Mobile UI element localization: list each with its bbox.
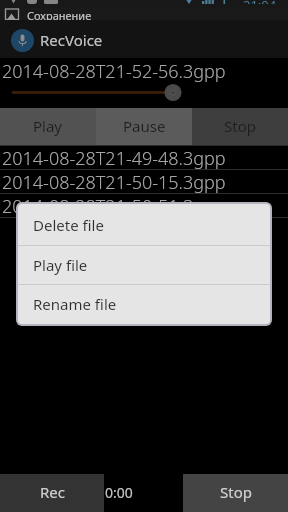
button[interactable]: Play file (18, 246, 270, 284)
button[interactable]: Rename file (18, 285, 270, 323)
staticText: 2014-08-28T21-52-56.3gpp (2, 59, 226, 84)
staticText: Stop (220, 482, 252, 502)
button[interactable]: 2014-08-28T21-50-51.3gpp (0, 194, 288, 217)
staticText: Delete file (33, 215, 104, 235)
staticText: Сохранение (27, 8, 92, 23)
staticText: Play (33, 116, 63, 136)
button[interactable]: Pause (96, 108, 192, 145)
staticText: RecVoice (40, 30, 103, 50)
staticText: 2014-08-28T21-50-15.3gpp (2, 170, 226, 193)
staticText: 2014-08-28T21-49-48.3gpp (2, 146, 226, 169)
staticText: Play file (33, 255, 88, 275)
button[interactable]: Stop (183, 474, 288, 512)
staticText: Rec (40, 482, 65, 502)
button[interactable]: Rec (0, 474, 104, 512)
button[interactable]: Delete file (18, 204, 270, 245)
staticText: Stop (224, 116, 256, 136)
button[interactable]: Play (0, 108, 96, 145)
staticText: Pause (123, 116, 166, 136)
staticText: 21:04 (243, 0, 277, 4)
staticText: Rename file (33, 294, 117, 314)
staticText: 0:00 (105, 483, 133, 502)
button[interactable]: 2014-08-28T21-50-15.3gpp (0, 170, 288, 193)
staticText: 2014-08-28T21-50-51.3gpp (2, 194, 226, 217)
button[interactable]: 2014-08-28T21-49-48.3gpp (0, 146, 288, 169)
button[interactable]: Stop (192, 108, 288, 145)
